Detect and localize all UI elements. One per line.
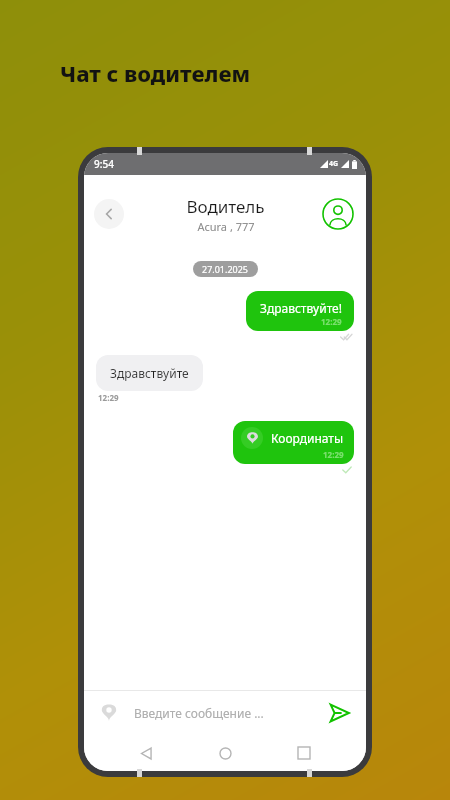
staticText: Acura , 777 (197, 219, 255, 234)
staticText: Водитель (186, 195, 265, 218)
button[interactable]: Send (324, 698, 354, 728)
staticText: Введите сообщение ... (134, 705, 324, 721)
button[interactable]: Recents (287, 736, 321, 770)
button[interactable]: Profile (322, 198, 354, 230)
button[interactable]: Send location (96, 700, 122, 726)
button[interactable]: Back (94, 199, 124, 229)
staticText: 12:29 (323, 449, 344, 460)
staticText: Координаты (271, 430, 344, 446)
staticText: 12:29 (321, 316, 342, 327)
button[interactable]: Home (208, 736, 242, 770)
staticText: 9:54 (94, 157, 114, 171)
button[interactable]: Back (129, 736, 163, 770)
staticText: Чат с водителем (60, 58, 251, 88)
staticText: 12:29 (98, 392, 119, 403)
staticText: Здравствуйте (110, 365, 189, 381)
staticText: Здравствуйте! (260, 300, 342, 316)
button[interactable]: Здравствуйте (96, 355, 203, 391)
staticText: 4G (329, 159, 339, 169)
button[interactable]: Здравствуйте! (246, 291, 354, 331)
staticText: 27.01.2025 (202, 263, 249, 275)
button[interactable]: Координаты (233, 421, 354, 464)
